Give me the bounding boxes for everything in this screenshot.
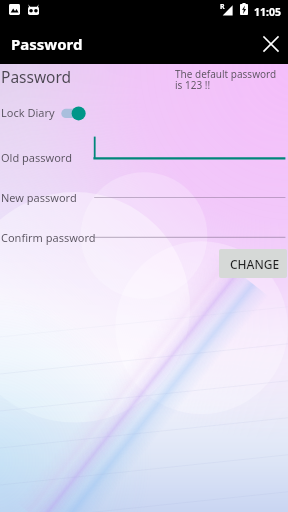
staticText: Lock Diary xyxy=(1,105,55,120)
staticText: New password xyxy=(1,190,77,205)
button[interactable]: CHANGE xyxy=(219,249,287,278)
staticText: 11:05 xyxy=(254,5,281,19)
staticText: Old password xyxy=(1,150,72,165)
button[interactable]: Lock Diary xyxy=(0,102,288,122)
button[interactable]: Close xyxy=(252,24,288,64)
staticText: Confirm password xyxy=(1,230,96,245)
staticText: R xyxy=(220,2,225,12)
staticText: CHANGE xyxy=(230,256,280,272)
staticText: Password xyxy=(11,34,83,54)
staticText: Password xyxy=(1,66,72,87)
staticText: The default password is 123 !! xyxy=(175,67,277,92)
